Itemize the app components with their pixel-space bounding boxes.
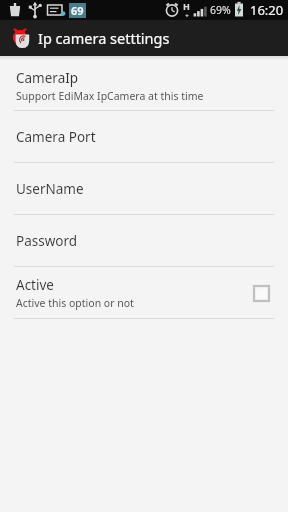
button[interactable]: Camera Port xyxy=(0,111,288,162)
staticText: 16:20 xyxy=(250,1,284,19)
other: Signal strength xyxy=(193,0,208,20)
button[interactable]: Active checkbox, unchecked xyxy=(248,280,274,306)
staticText: UserName xyxy=(16,180,84,198)
other: Storage xyxy=(46,0,66,20)
other: Alarm set xyxy=(164,0,180,20)
button[interactable]: Password xyxy=(0,215,288,266)
staticText: Password xyxy=(16,232,78,250)
other: Work profile xyxy=(6,0,24,20)
staticText: 69 xyxy=(71,3,84,18)
staticText: Active xyxy=(16,276,54,294)
button[interactable]: UserName xyxy=(0,163,288,214)
button[interactable]: Active xyxy=(0,267,288,318)
staticText: H xyxy=(183,0,190,12)
button[interactable]: Ip camera setttings xyxy=(0,20,288,56)
staticText: 69% xyxy=(210,3,231,17)
staticText: Support EdiMax IpCamera at this time xyxy=(16,89,204,103)
staticText: CameraIp xyxy=(16,69,79,87)
staticText: Camera Port xyxy=(16,128,96,146)
staticText: Ip camera setttings xyxy=(38,28,170,48)
other: Battery charging 69% xyxy=(233,0,246,20)
staticText: + xyxy=(185,12,189,20)
button[interactable]: CameraIp xyxy=(0,61,288,110)
other: USB connected xyxy=(28,0,42,20)
staticText: Active this option or not xyxy=(16,296,134,310)
other: Mobile network H+ xyxy=(183,0,190,20)
